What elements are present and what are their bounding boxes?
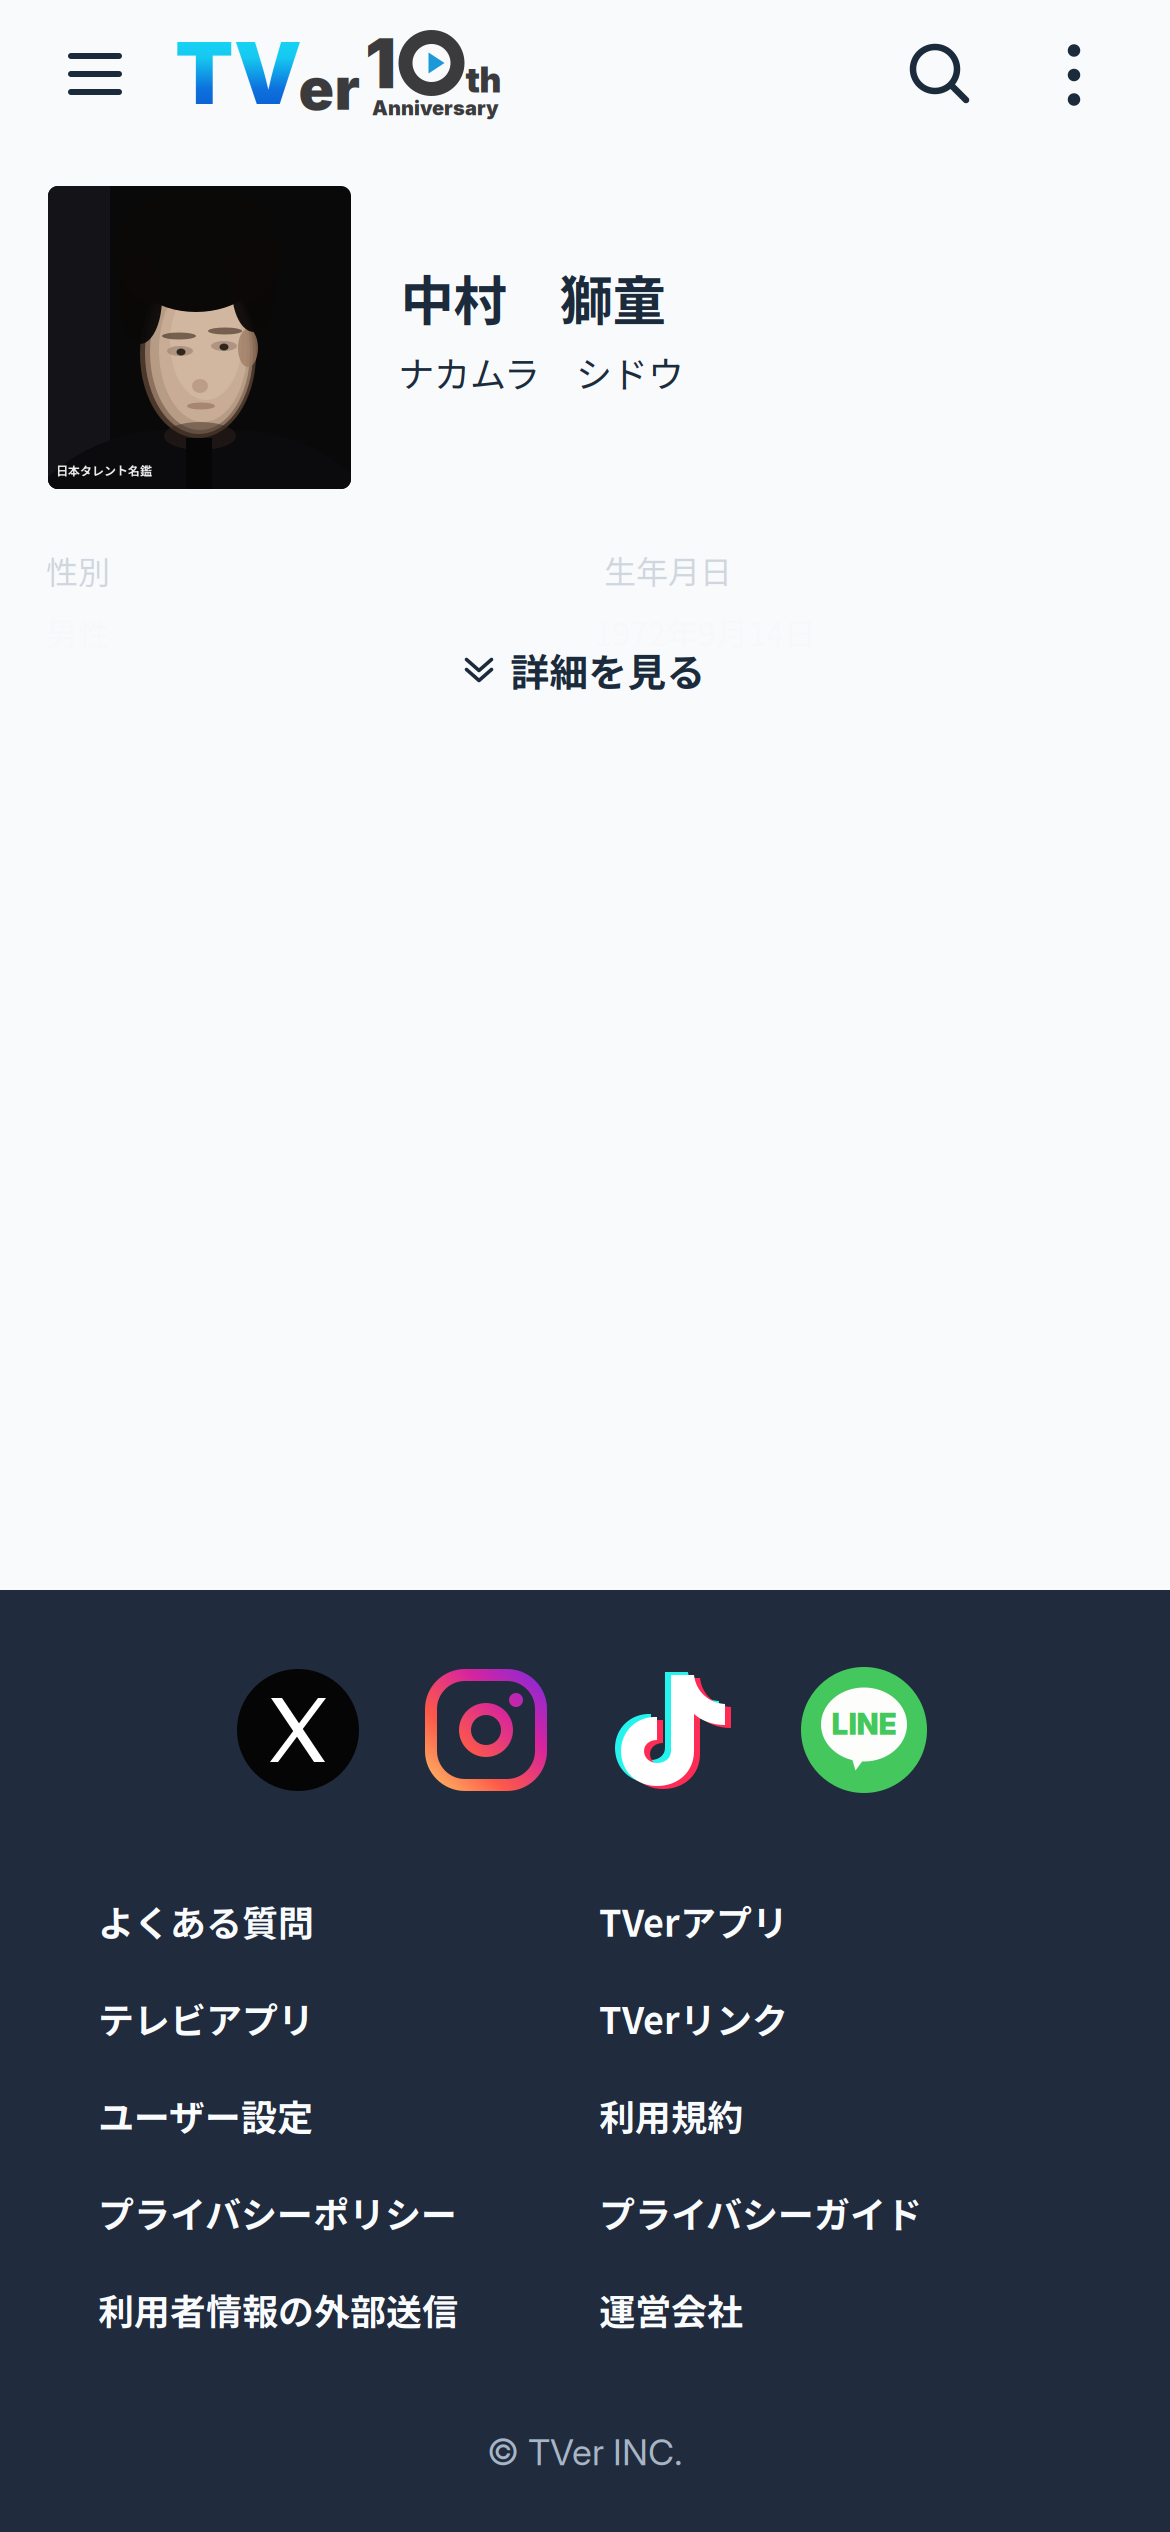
button[interactable]: 詳細を見る: [424, 620, 745, 720]
staticText: LINE: [831, 1706, 896, 1742]
staticText: ナカムラ シドウ: [398, 346, 684, 398]
staticText: 生年月日: [604, 547, 732, 593]
button[interactable]: X: [237, 1669, 359, 1791]
staticText: ユーザー設定: [98, 2089, 313, 2141]
button[interactable]: メニュー: [47, 26, 143, 122]
button[interactable]: テレビアプリ: [98, 1992, 599, 2044]
staticText: プライバシーガイド: [599, 2186, 922, 2238]
staticText: © TVer INC.: [487, 2430, 683, 2474]
button[interactable]: Instagram: [425, 1669, 547, 1791]
staticText: プライバシーポリシー: [98, 2186, 457, 2238]
staticText: 1: [365, 21, 396, 105]
staticText: 利用者情報の外部送信: [98, 2283, 458, 2336]
staticText: 中村 獅童: [400, 258, 665, 336]
button[interactable]: 検索: [890, 26, 990, 122]
button[interactable]: プライバシーガイド: [599, 2186, 1100, 2238]
staticText: TVerリンク: [599, 1992, 788, 2044]
staticText: 日本タレント名鑑: [56, 462, 152, 479]
button[interactable]: LINE: [801, 1667, 927, 1793]
button[interactable]: プライバシーポリシー: [98, 2186, 599, 2238]
button[interactable]: よくある質問: [98, 1895, 599, 1947]
staticText: th: [465, 59, 501, 101]
staticText: Anniversary: [372, 96, 499, 120]
staticText: TVerアプリ: [599, 1895, 788, 1947]
button[interactable]: TVer ホーム: [174, 19, 499, 123]
staticText: テレビアプリ: [98, 1992, 314, 2044]
staticText: 詳細を見る: [510, 642, 705, 698]
staticText: 利用規約: [599, 2089, 743, 2141]
staticText: よくある質問: [98, 1895, 314, 1947]
button[interactable]: 運営会社: [599, 2283, 1100, 2336]
button[interactable]: 利用規約: [599, 2089, 1100, 2141]
staticText: 性別: [46, 547, 110, 593]
button[interactable]: その他: [1029, 27, 1119, 123]
button[interactable]: TVerアプリ: [599, 1895, 1100, 1947]
button[interactable]: ユーザー設定: [98, 2089, 599, 2141]
staticText: er: [298, 53, 359, 124]
button[interactable]: TVerリンク: [599, 1992, 1100, 2044]
button[interactable]: TikTok: [613, 1669, 735, 1791]
button[interactable]: 利用者情報の外部送信: [98, 2283, 599, 2336]
staticText: 運営会社: [599, 2283, 743, 2336]
